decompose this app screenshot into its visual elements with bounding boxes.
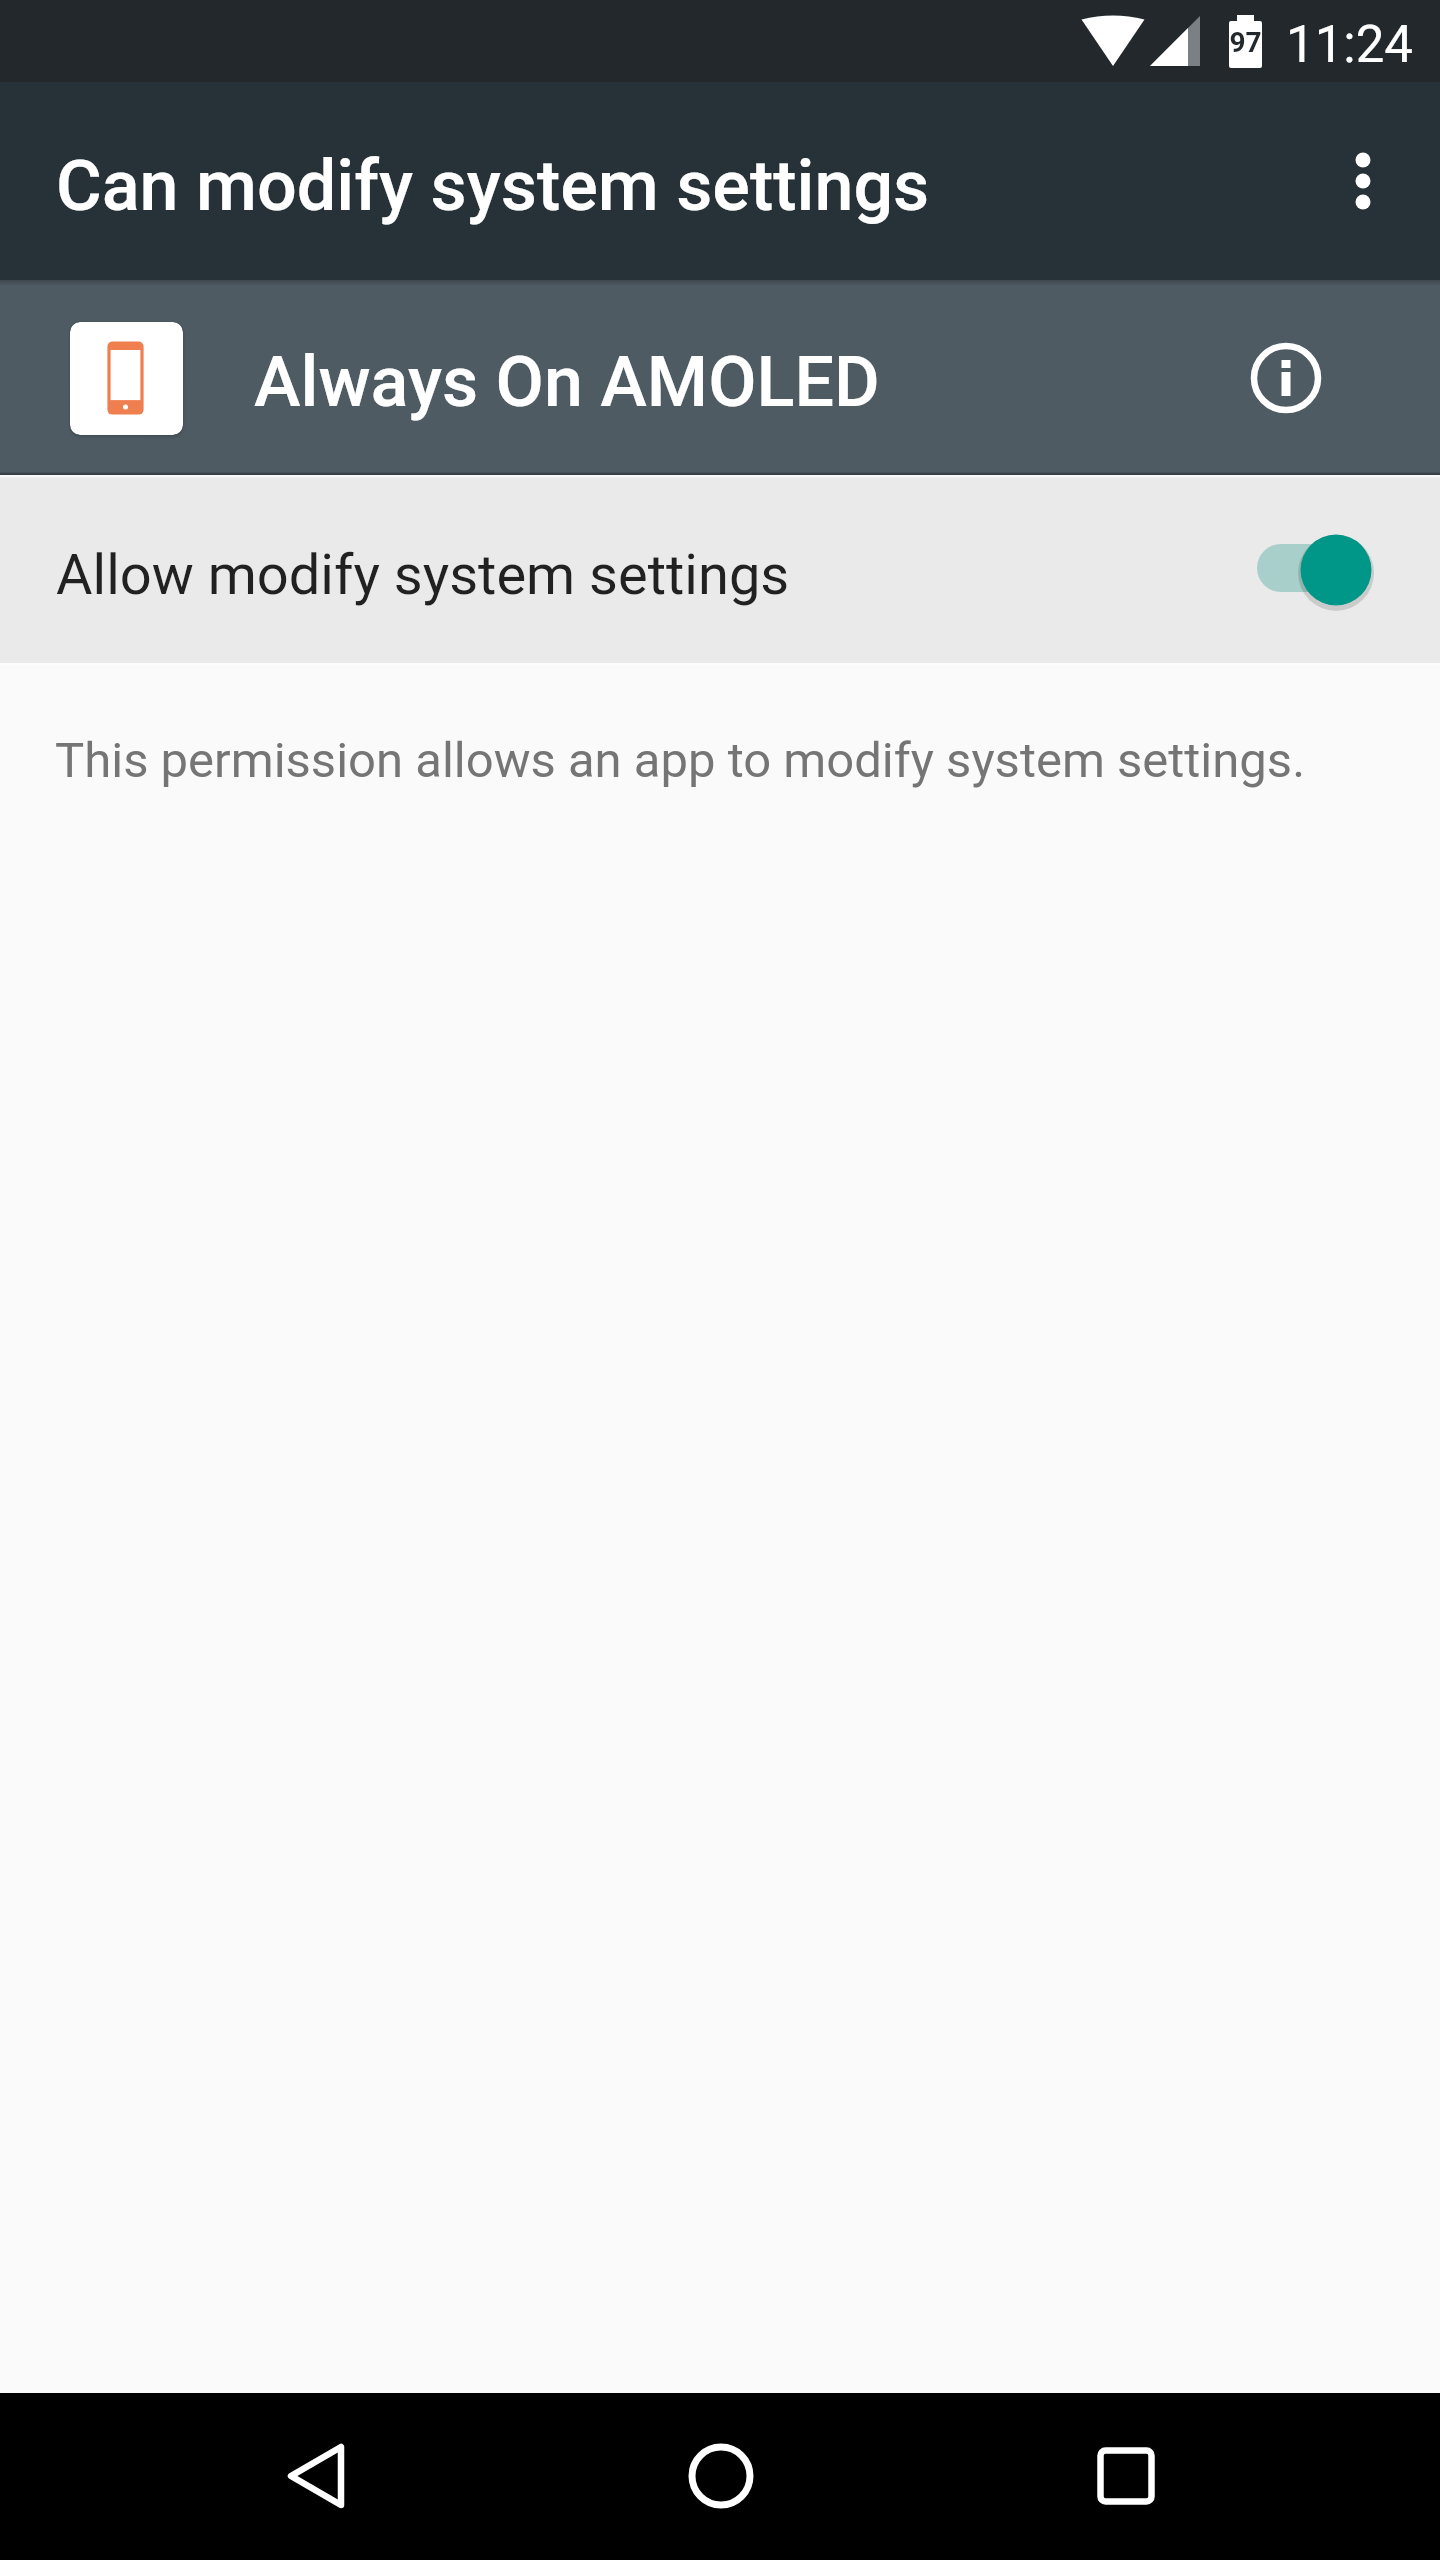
- button[interactable]: More options: [1307, 125, 1419, 237]
- button[interactable]: Home: [641, 2397, 801, 2557]
- staticText: Allow modify system settings: [56, 542, 790, 608]
- button[interactable]: App info: [1216, 308, 1356, 448]
- staticText: This permission allows an app to modify …: [55, 732, 1306, 789]
- button[interactable]: Back: [236, 2397, 396, 2557]
- staticText: Always On AMOLED: [254, 341, 880, 423]
- button[interactable]: Recent apps: [1046, 2397, 1206, 2557]
- staticText: Can modify system settings: [56, 145, 930, 227]
- staticText: 11:24: [1286, 15, 1414, 75]
- button[interactable]: Allow modify system settings: [0, 475, 1440, 663]
- staticText: 97: [1224, 26, 1267, 59]
